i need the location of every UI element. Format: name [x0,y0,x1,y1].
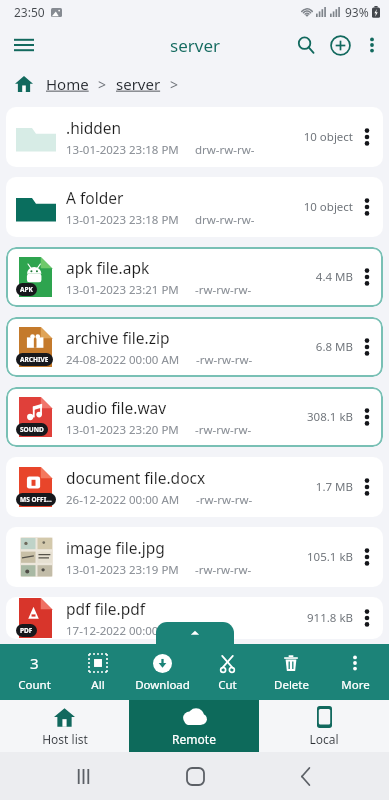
staticText: 3 [30,653,39,673]
staticText: Remote [172,731,216,747]
staticText: archive file.zip [66,327,170,348]
staticText: .hidden [66,117,122,138]
button[interactable]: Item options [353,459,381,515]
staticText: 10 object [303,199,353,215]
button[interactable]: server [116,74,161,94]
button[interactable]: image file.jpg [6,527,383,587]
staticText: 23:50 [14,4,45,20]
staticText: 26-12-2022 00:00 AM [66,492,180,508]
staticText: 93% [345,4,369,20]
button[interactable]: Cut [197,644,257,700]
staticText: SOUND [20,425,44,434]
staticText: 4.4 MB [315,269,353,285]
staticText: Host list [42,731,88,747]
staticText: 24-08-2022 00:00 AM [66,352,180,368]
staticText: 17-12-2022 00:00 [66,623,159,639]
staticText: audio file.wav [66,397,167,418]
button[interactable]: Home [167,752,223,800]
staticText: 10 object [303,129,353,145]
staticText: 13-01-2023 23:20 PM [66,422,179,438]
button[interactable]: Remote [129,700,259,752]
staticText: 1.7 MB [315,479,353,495]
staticText: document file.docx [66,467,206,488]
staticText: Cut [218,677,237,693]
staticText: Home [46,74,89,94]
button[interactable]: Home [12,72,36,96]
button[interactable]: Item options [353,109,381,165]
staticText: PDF [20,626,33,635]
button[interactable]: Item options [353,179,381,235]
button[interactable]: 3 [4,644,64,700]
staticText: Download [135,677,190,693]
staticText: -rw-rw-rw- [195,282,252,298]
staticText: ARCHIVE [20,355,49,364]
button[interactable]: All [68,644,128,700]
staticText: image file.jpg [66,537,165,558]
staticText: -rw-rw-rw- [195,422,252,438]
button[interactable]: Host list [0,700,129,752]
staticText: More [341,677,370,693]
button[interactable]: A folder [6,177,383,237]
staticText: APK [20,285,33,294]
staticText: 13-01-2023 23:18 PM [66,142,179,158]
button[interactable]: More [325,644,385,700]
staticText: > [98,75,107,94]
staticText: 308.1 kB [307,409,353,425]
button[interactable]: SOUND [6,387,383,447]
staticText: MS OFFICE [20,495,52,504]
staticText: drw-rw-rw- [195,142,255,158]
staticText: 13-01-2023 23:21 PM [66,282,179,298]
staticText: A folder [66,187,124,208]
staticText: server [116,74,161,94]
button[interactable]: .hidden [6,107,383,167]
staticText: 13-01-2023 23:18 PM [66,212,179,228]
button[interactable]: Item options [353,389,381,445]
button[interactable]: Item options [353,319,381,375]
staticText: -rw-rw-rw- [196,352,253,368]
staticText: All [91,677,105,693]
button[interactable]: Search [289,28,323,62]
button[interactable]: Download [132,644,192,700]
staticText: > [170,75,179,94]
button[interactable]: Item options [353,597,381,639]
button[interactable]: Back [278,752,334,800]
staticText: 13-01-2023 23:19 PM [66,562,179,578]
button[interactable]: ARCHIVE [6,317,383,377]
staticText: -rw-rw-rw- [196,492,253,508]
button[interactable]: Home [46,74,89,94]
staticText: apk file.apk [66,257,150,278]
button[interactable]: Item options [353,249,381,305]
staticText: 911.8 kB [307,610,353,626]
button[interactable]: Local [259,700,389,752]
staticText: drw-rw-rw- [195,212,255,228]
staticText: rw-rw- [175,623,210,639]
button[interactable]: Recents [55,752,111,800]
staticText: server [170,34,220,57]
staticText: 105.1 kB [307,549,353,565]
button[interactable]: Add [323,28,357,62]
button[interactable]: Item options [353,529,381,585]
staticText: Local [309,731,339,747]
staticText: Count [18,677,51,693]
staticText: -rw-rw-rw- [195,562,252,578]
button[interactable]: MS OFFICE [6,457,383,517]
button[interactable]: Expand actions [156,622,234,644]
button[interactable]: Delete [261,644,321,700]
button[interactable]: More options [357,30,387,60]
staticText: Delete [274,677,309,693]
staticText: pdf file.pdf [66,598,146,619]
button[interactable]: APK [6,247,383,307]
button[interactable]: Menu [4,25,44,65]
button[interactable]: PDF [6,597,383,639]
staticText: 6.8 MB [315,339,353,355]
